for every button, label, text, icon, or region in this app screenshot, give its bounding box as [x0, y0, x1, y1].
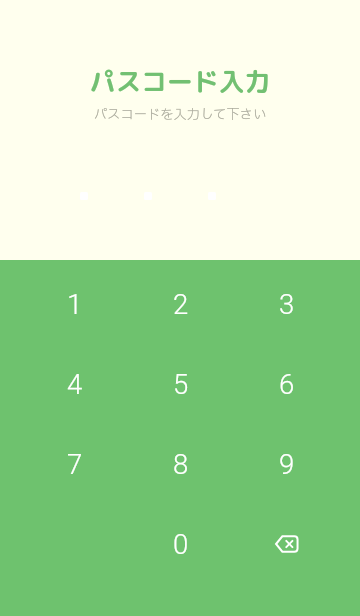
button[interactable]: 8 — [128, 424, 234, 504]
button[interactable]: 9 — [234, 424, 340, 504]
button[interactable]: Delete — [234, 504, 340, 584]
button[interactable]: 3 — [234, 264, 340, 344]
staticText: 8 — [173, 448, 189, 480]
staticText: パスコード入力 — [0, 63, 360, 99]
staticText: 6 — [279, 368, 295, 400]
button[interactable]: 6 — [234, 344, 340, 424]
staticText: 2 — [173, 288, 189, 320]
button[interactable]: 5 — [128, 344, 234, 424]
staticText: 4 — [67, 368, 83, 400]
staticText: 5 — [173, 368, 189, 400]
button[interactable]: 0 — [128, 504, 234, 584]
staticText: 3 — [279, 288, 295, 320]
staticText: 9 — [279, 448, 295, 480]
staticText: 0 — [173, 528, 189, 560]
button[interactable]: 7 — [22, 424, 128, 504]
button[interactable]: 1 — [22, 264, 128, 344]
staticText: 1 — [67, 288, 83, 320]
button[interactable]: 4 — [22, 344, 128, 424]
staticText: 7 — [67, 448, 83, 480]
button[interactable]: 2 — [128, 264, 234, 344]
staticText: パスコードを入力して下さい — [0, 105, 360, 125]
